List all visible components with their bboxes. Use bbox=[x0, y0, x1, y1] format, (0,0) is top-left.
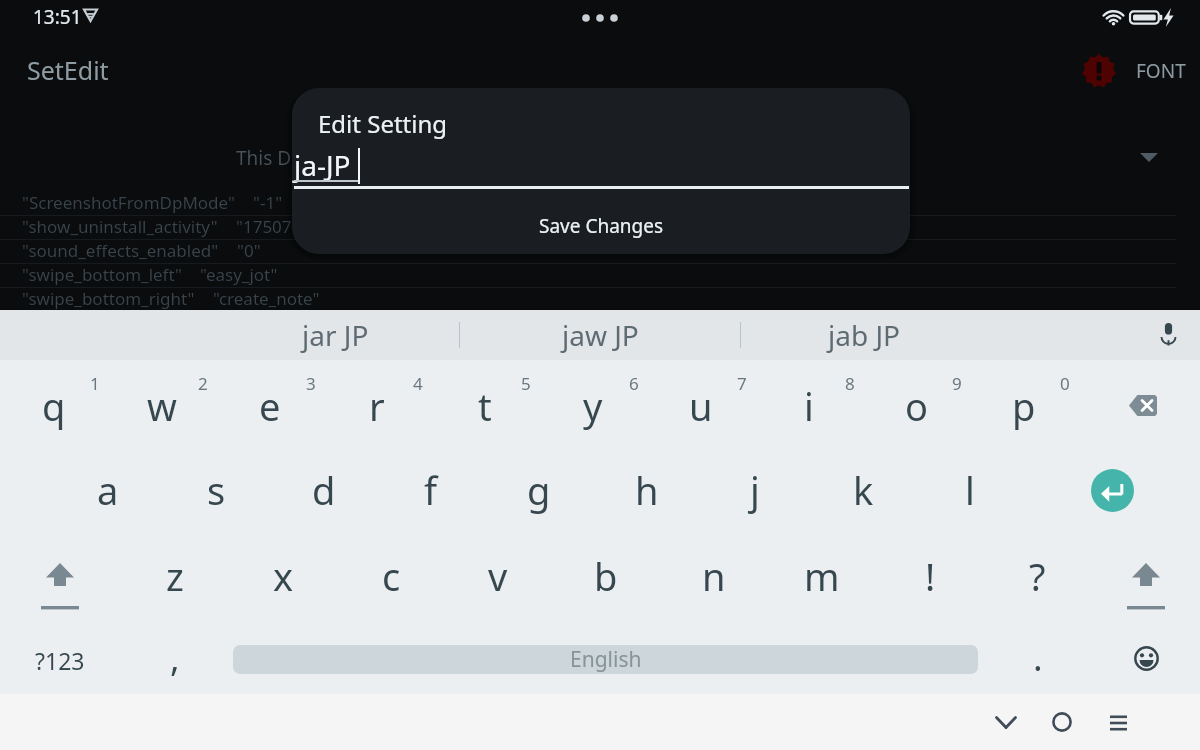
staticText: y bbox=[583, 380, 603, 432]
button[interactable]: FONT bbox=[1136, 58, 1186, 84]
button[interactable]: This Device bbox=[236, 145, 336, 171]
staticText: m bbox=[804, 550, 840, 602]
staticText: w bbox=[147, 380, 177, 432]
staticText: q bbox=[42, 380, 66, 432]
staticText: "create_note" bbox=[213, 287, 320, 310]
staticText: ! bbox=[925, 550, 936, 602]
button[interactable]: Recent apps bbox=[1090, 694, 1146, 750]
staticText: "swipe_bottom_right" bbox=[22, 287, 195, 310]
button[interactable]: English bbox=[233, 645, 978, 674]
staticText: l bbox=[965, 464, 975, 516]
button[interactable]: Shift bbox=[1104, 538, 1188, 626]
button[interactable]: "sound_effects_enabled" bbox=[0, 239, 1200, 263]
staticText: "1750715" bbox=[236, 215, 318, 238]
button[interactable]: jab JP bbox=[744, 310, 984, 360]
staticText: FONT bbox=[1136, 58, 1186, 84]
button[interactable]: Shift bbox=[18, 538, 102, 626]
button[interactable] bbox=[445, 538, 553, 626]
button[interactable] bbox=[660, 538, 768, 626]
staticText: ja-JP bbox=[294, 146, 351, 184]
button[interactable] bbox=[431, 360, 539, 450]
staticText: 8 bbox=[845, 372, 855, 395]
button[interactable] bbox=[216, 360, 324, 450]
button[interactable] bbox=[121, 538, 229, 626]
staticText: a bbox=[97, 464, 119, 516]
staticText: g bbox=[527, 464, 551, 516]
staticText: 5 bbox=[521, 372, 531, 395]
button[interactable]: Select namespace bbox=[1139, 150, 1159, 164]
button[interactable] bbox=[378, 450, 486, 538]
button[interactable] bbox=[539, 360, 647, 450]
staticText: 2 bbox=[198, 372, 208, 395]
button[interactable]: ?123 bbox=[12, 626, 108, 694]
button[interactable] bbox=[552, 538, 660, 626]
button[interactable] bbox=[485, 450, 593, 538]
button[interactable] bbox=[337, 538, 445, 626]
button[interactable]: "ScreenshotFromDpMode" bbox=[0, 195, 1200, 215]
button[interactable]: Enter bbox=[1068, 446, 1156, 534]
staticText: t bbox=[478, 380, 492, 432]
button[interactable] bbox=[755, 360, 863, 450]
staticText: jar JP bbox=[302, 316, 369, 354]
staticText: ? bbox=[1029, 550, 1046, 602]
staticText: i bbox=[804, 380, 814, 432]
staticText: Edit Setting bbox=[318, 107, 448, 140]
button[interactable]: "swipe_bottom_right" bbox=[0, 287, 1200, 310]
staticText: s bbox=[207, 464, 226, 516]
staticText: b bbox=[594, 550, 618, 602]
button[interactable] bbox=[162, 450, 270, 538]
button[interactable] bbox=[270, 450, 378, 538]
button[interactable] bbox=[917, 450, 1025, 538]
button[interactable] bbox=[768, 538, 876, 626]
button[interactable]: Warning bbox=[1079, 51, 1119, 91]
button[interactable]: Hide keyboard bbox=[978, 694, 1034, 750]
button[interactable] bbox=[0, 360, 108, 450]
button[interactable]: Voice input bbox=[1151, 317, 1185, 351]
button[interactable] bbox=[54, 450, 162, 538]
button[interactable]: Backspace bbox=[1096, 360, 1190, 450]
staticText: j bbox=[750, 464, 760, 516]
button[interactable] bbox=[108, 360, 216, 450]
button[interactable]: jar JP bbox=[215, 310, 455, 360]
staticText: 9 bbox=[952, 372, 962, 395]
button[interactable] bbox=[970, 360, 1078, 450]
staticText: r bbox=[369, 380, 385, 432]
button[interactable]: . bbox=[998, 626, 1078, 694]
staticText: h bbox=[635, 464, 659, 516]
staticText: k bbox=[853, 464, 874, 516]
staticText: v bbox=[488, 550, 508, 602]
staticText: z bbox=[166, 550, 184, 602]
button[interactable] bbox=[324, 360, 432, 450]
button[interactable] bbox=[593, 450, 701, 538]
button[interactable] bbox=[876, 538, 984, 626]
staticText: "0" bbox=[237, 239, 261, 262]
button[interactable]: Home bbox=[1034, 694, 1090, 750]
staticText: 3 bbox=[306, 372, 316, 395]
button[interactable]: "swipe_bottom_left" bbox=[0, 263, 1200, 287]
staticText: Save Changes bbox=[539, 213, 664, 239]
staticText: 4 bbox=[413, 372, 423, 395]
button[interactable]: , bbox=[130, 626, 220, 694]
button[interactable] bbox=[701, 450, 809, 538]
staticText: "-1" bbox=[253, 195, 283, 214]
button[interactable]: SetEdit bbox=[27, 53, 109, 87]
staticText: x bbox=[273, 550, 294, 602]
button[interactable] bbox=[984, 538, 1092, 626]
button[interactable]: Emoji bbox=[1110, 624, 1182, 692]
staticText: 13:51 bbox=[33, 4, 82, 30]
staticText: "ScreenshotFromDpMode" bbox=[22, 195, 235, 214]
staticText: "easy_jot" bbox=[200, 263, 278, 286]
staticText: c bbox=[382, 550, 401, 602]
button[interactable] bbox=[863, 360, 971, 450]
button[interactable] bbox=[809, 450, 917, 538]
staticText: 1 bbox=[90, 372, 100, 395]
button[interactable] bbox=[647, 360, 755, 450]
staticText: f bbox=[424, 464, 438, 516]
staticText: 6 bbox=[629, 372, 639, 395]
button[interactable]: "show_uninstall_activity" bbox=[0, 215, 1200, 239]
staticText: SetEdit bbox=[27, 53, 109, 87]
button[interactable] bbox=[229, 538, 337, 626]
button[interactable]: jaw JP bbox=[480, 310, 720, 360]
staticText: jab JP bbox=[828, 316, 901, 354]
button[interactable]: Save Changes bbox=[292, 198, 910, 254]
